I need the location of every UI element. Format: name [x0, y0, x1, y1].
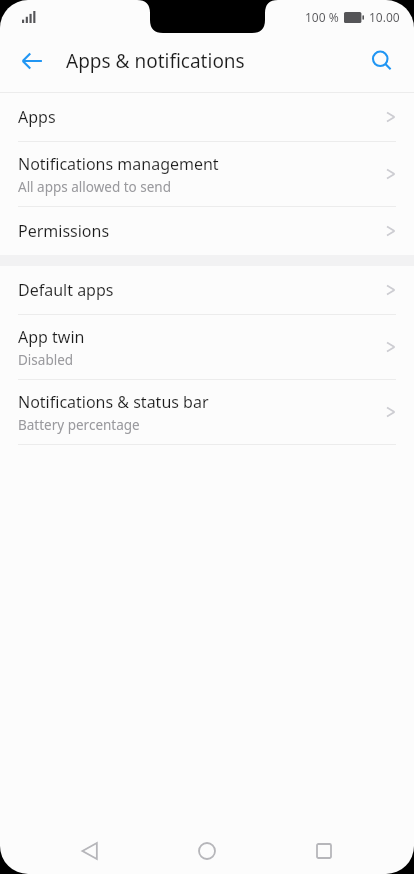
staticText: 10.00: [369, 9, 400, 25]
button[interactable]: Notifications management: [0, 142, 414, 206]
staticText: Permissions: [18, 220, 110, 242]
staticText: All apps allowed to send: [18, 178, 172, 196]
button[interactable]: Back: [10, 39, 54, 83]
button[interactable]: Notifications & status bar: [0, 380, 414, 444]
staticText: Notifications & status bar: [18, 391, 209, 413]
button[interactable]: App twin: [0, 315, 414, 379]
staticText: 100 %: [305, 9, 339, 25]
staticText: Notifications management: [18, 153, 219, 175]
button[interactable]: Recent apps: [297, 828, 351, 874]
button[interactable]: Default apps: [0, 266, 414, 314]
button[interactable]: Search: [360, 39, 404, 83]
staticText: Apps: [18, 106, 56, 128]
button[interactable]: Permissions: [0, 207, 414, 255]
button[interactable]: Apps: [0, 93, 414, 141]
staticText: App twin: [18, 326, 85, 348]
staticText: Battery percentage: [18, 416, 140, 434]
staticText: Disabled: [18, 351, 74, 369]
button[interactable]: Back: [63, 828, 117, 874]
staticText: Default apps: [18, 279, 114, 301]
button[interactable]: Home: [180, 828, 234, 874]
staticText: Apps & notifications: [66, 48, 245, 74]
